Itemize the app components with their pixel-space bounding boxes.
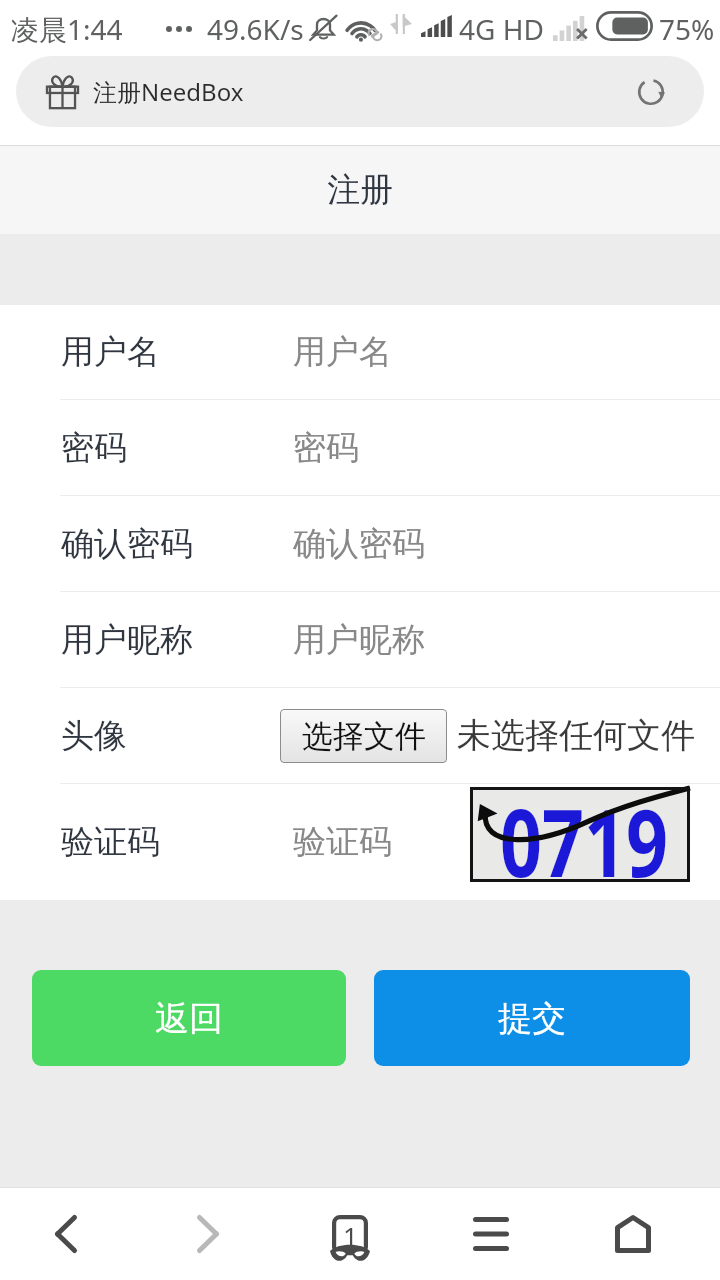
button[interactable]: Tabs: [279, 1188, 421, 1280]
button[interactable]: Home: [562, 1188, 704, 1280]
staticText: 验证码: [61, 821, 160, 863]
staticText: 头像: [61, 715, 127, 757]
button[interactable]: 用户名: [0, 305, 720, 399]
staticText: 用户昵称: [61, 619, 193, 661]
staticText: 4G HD: [459, 10, 544, 48]
staticText: 75%: [659, 10, 715, 48]
staticText: 未选择任何文件: [457, 714, 695, 757]
staticText: 49.6K/s: [207, 10, 304, 48]
button[interactable]: Back: [0, 1188, 137, 1280]
button[interactable]: 确认密码: [0, 496, 720, 591]
staticText: 选择文件: [302, 717, 426, 756]
staticText: 1: [343, 1218, 358, 1253]
staticText: 密码: [61, 427, 127, 469]
staticText: 用户名: [293, 331, 392, 373]
staticText: 密码: [293, 427, 359, 469]
staticText: 提交: [498, 997, 566, 1040]
button[interactable]: 头像: [0, 688, 720, 783]
button[interactable]: Forward: [137, 1188, 279, 1280]
button[interactable]: 提交: [374, 970, 690, 1066]
staticText: 返回: [155, 997, 223, 1040]
button[interactable]: 选择文件: [280, 709, 447, 763]
staticText: 注册: [327, 169, 393, 211]
staticText: 用户昵称: [293, 619, 425, 661]
staticText: 用户名: [61, 331, 160, 373]
button[interactable]: 返回: [32, 970, 346, 1066]
staticText: 验证码: [293, 821, 392, 863]
button[interactable]: 密码: [0, 400, 720, 495]
staticText: 凌晨1:44: [11, 10, 123, 48]
button[interactable]: Refresh: [625, 66, 677, 118]
staticText: 注册NeedBox: [93, 75, 244, 108]
button[interactable]: 注册NeedBox: [16, 56, 704, 127]
button[interactable]: Captcha image: [470, 787, 690, 882]
staticText: 0719: [500, 778, 668, 904]
button[interactable]: Menu: [420, 1188, 562, 1280]
staticText: 确认密码: [61, 523, 193, 565]
button[interactable]: 验证码: [0, 784, 720, 900]
button[interactable]: 用户昵称: [0, 592, 720, 687]
staticText: 确认密码: [293, 523, 425, 565]
